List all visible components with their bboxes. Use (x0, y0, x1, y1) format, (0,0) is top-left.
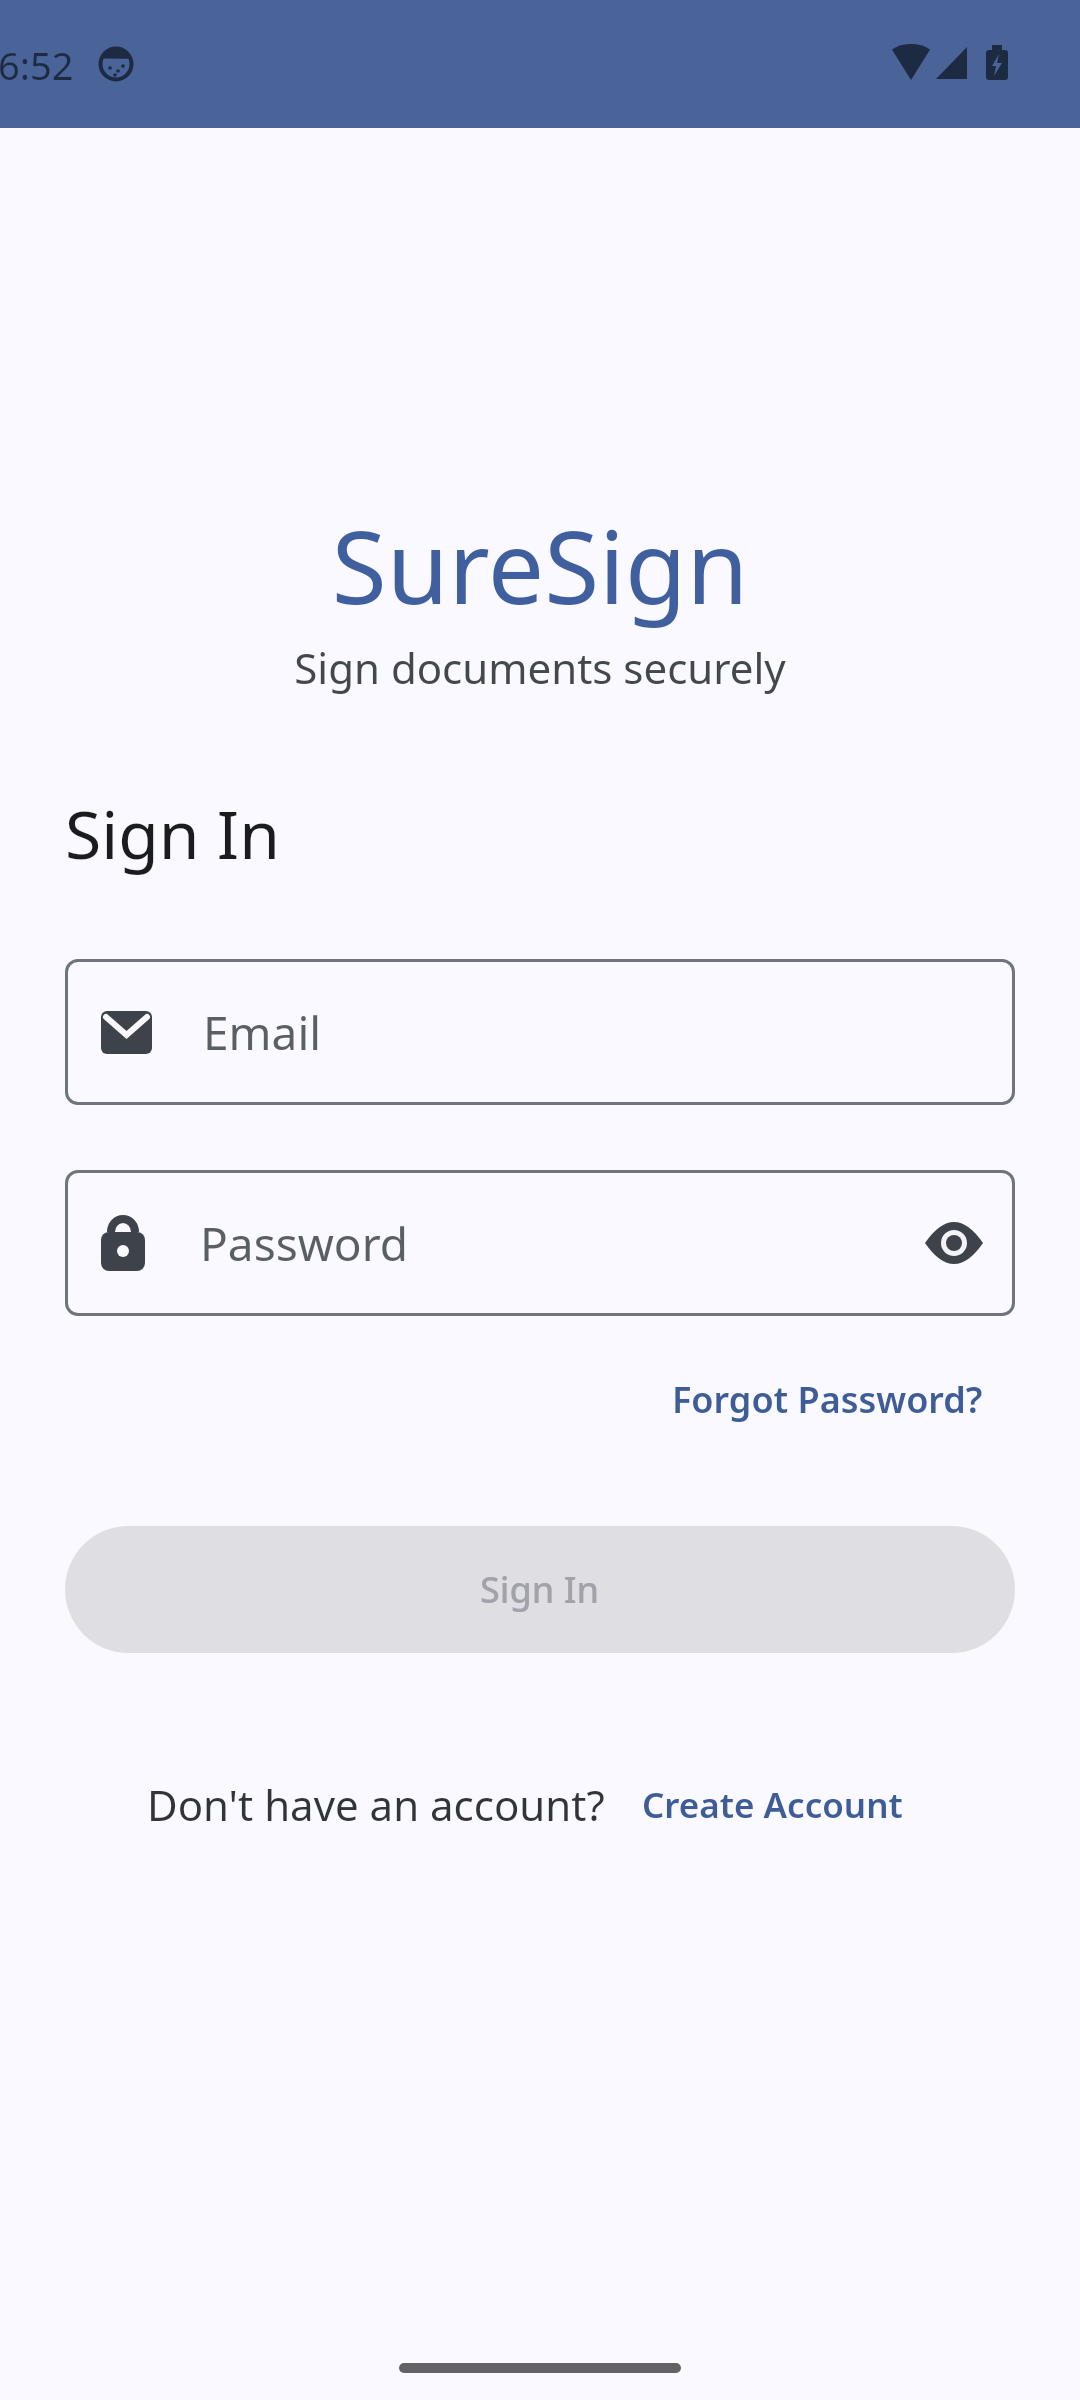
staticText: Sign In (480, 1565, 600, 1614)
staticText: Sign documents securely (0, 639, 1080, 696)
staticText: Password (200, 1212, 409, 1275)
button[interactable]: Create Account (642, 1781, 903, 1829)
staticText: SureSign (0, 497, 1080, 633)
staticText: Don't have an account? (147, 1776, 605, 1833)
staticText: Create Account (642, 1781, 903, 1829)
staticText: Forgot Password? (672, 1375, 983, 1424)
button[interactable]: Forgot Password? (672, 1375, 983, 1424)
staticText: 6:52 (0, 39, 74, 91)
button[interactable]: Sign In (65, 1526, 1015, 1653)
button[interactable]: Password (65, 1170, 1015, 1316)
staticText: Email (203, 1001, 322, 1064)
staticText: Sign In (65, 788, 280, 878)
button[interactable]: Email (65, 959, 1015, 1105)
